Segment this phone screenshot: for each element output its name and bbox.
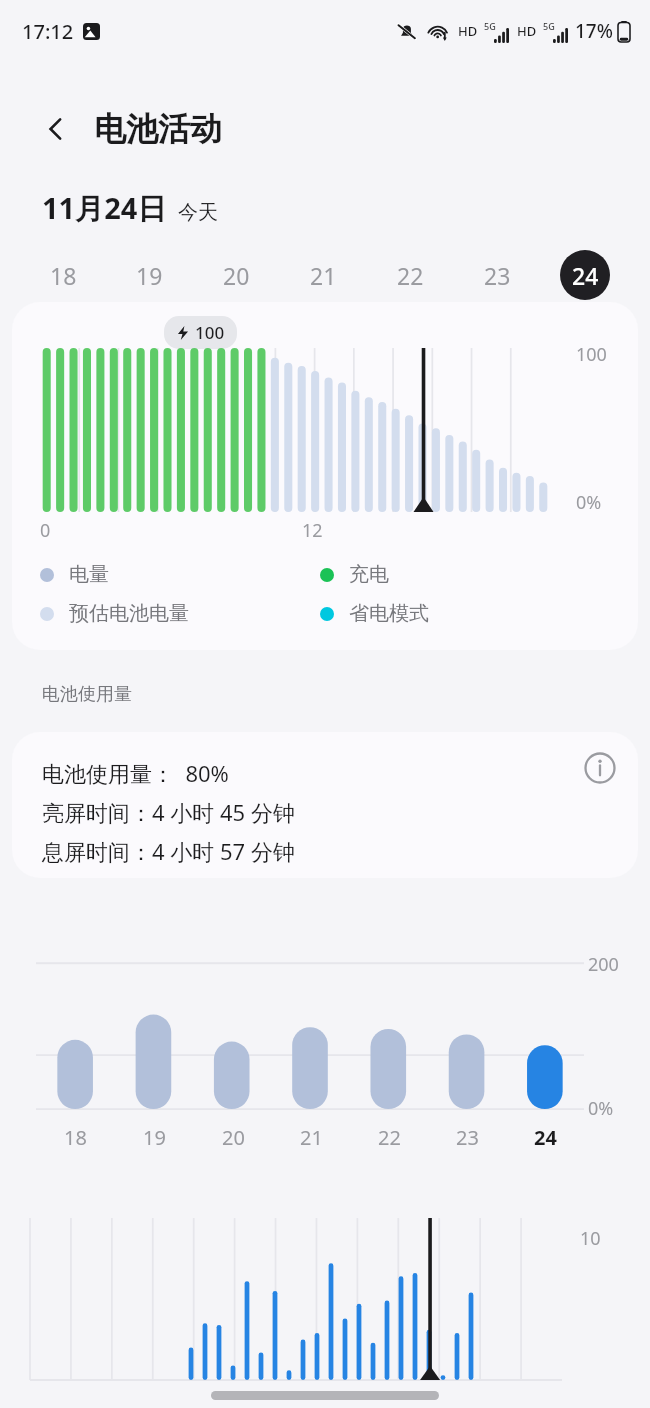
staticText: 24: [534, 1124, 557, 1151]
staticText: 电量: [69, 562, 109, 587]
button[interactable]: 20: [193, 248, 280, 302]
staticText: 22: [378, 1124, 401, 1151]
button[interactable]: Info: [574, 742, 626, 794]
staticText: 今天: [178, 200, 218, 225]
staticText: 18: [64, 1124, 87, 1151]
staticText: 0%: [576, 490, 602, 515]
staticText: 23: [456, 1124, 479, 1151]
button[interactable]: 23: [454, 248, 541, 302]
staticText: HD: [458, 22, 478, 40]
staticText: 19: [136, 260, 163, 291]
staticText: 息屏时间：4 小时 57 分钟: [42, 836, 295, 866]
staticText: 省电模式: [349, 601, 429, 626]
staticText: 充电: [349, 562, 389, 587]
button[interactable]: 22: [367, 248, 454, 302]
staticText: 21: [310, 260, 337, 291]
staticText: 12: [302, 518, 323, 543]
staticText: 电池使用量: [42, 683, 132, 706]
button[interactable]: 21: [280, 248, 367, 302]
staticText: 10: [580, 1226, 601, 1251]
button[interactable]: 24: [541, 248, 628, 302]
staticText: 11月24日: [42, 188, 167, 228]
staticText: 18: [50, 260, 77, 291]
staticText: 21: [300, 1124, 323, 1151]
staticText: 电池活动: [94, 109, 222, 149]
button[interactable]: Back: [32, 105, 80, 153]
staticText: 亮屏时间：4 小时 45 分钟: [42, 797, 295, 827]
staticText: 23: [484, 260, 511, 291]
button[interactable]: 18: [20, 248, 106, 302]
staticText: 19: [143, 1124, 166, 1151]
staticText: HD: [517, 22, 537, 40]
staticText: 22: [397, 260, 424, 291]
staticText: 5G: [484, 20, 496, 32]
staticText: 5G: [543, 20, 555, 32]
button[interactable]: 19: [106, 248, 193, 302]
staticText: 200: [588, 952, 619, 977]
staticText: 电池使用量： 80%: [42, 758, 229, 788]
staticText: 100: [195, 321, 225, 344]
staticText: 0: [40, 518, 51, 543]
staticText: 17:12: [22, 18, 74, 45]
staticText: 17%: [575, 18, 613, 44]
staticText: 20: [222, 1124, 245, 1151]
staticText: 24: [572, 260, 599, 291]
staticText: 20: [223, 260, 250, 291]
staticText: 预估电池电量: [69, 601, 189, 626]
staticText: 0%: [588, 1096, 614, 1121]
staticText: 100: [576, 342, 607, 367]
